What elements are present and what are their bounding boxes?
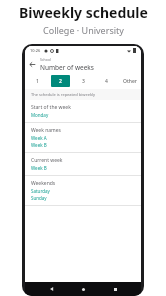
- staticText: Start of the week: [31, 104, 71, 111]
- button[interactable]: 3: [74, 75, 93, 87]
- staticText: Week B: [31, 142, 47, 148]
- button[interactable]: Recents: [110, 284, 120, 294]
- button[interactable]: 1: [27, 75, 47, 87]
- staticText: Sunday: [31, 195, 47, 201]
- staticText: 10:26: [30, 48, 41, 53]
- button[interactable]: Weekends: [25, 176, 141, 205]
- staticText: College · University: [43, 24, 124, 36]
- staticText: Biweekly schedule: [19, 3, 148, 22]
- button[interactable]: Other: [120, 75, 139, 87]
- staticText: Number of weeks: [40, 63, 94, 72]
- button[interactable]: Week names: [25, 123, 141, 152]
- staticText: 2: [59, 78, 62, 85]
- staticText: 4: [105, 78, 108, 85]
- button[interactable]: Start of the week: [25, 100, 141, 122]
- staticText: Week A: [31, 135, 47, 141]
- staticText: 3: [82, 78, 85, 85]
- button[interactable]: 4: [97, 75, 116, 87]
- staticText: Weekends: [31, 180, 56, 187]
- staticText: Other: [123, 78, 137, 85]
- staticText: Current week: [31, 157, 63, 164]
- button[interactable]: 2: [51, 75, 70, 87]
- staticText: School: [40, 57, 51, 62]
- button[interactable]: Current week: [25, 153, 141, 175]
- button[interactable]: Back: [25, 57, 39, 71]
- staticText: Week B: [31, 165, 47, 171]
- staticText: Monday: [31, 112, 49, 118]
- staticText: 1: [36, 78, 39, 85]
- button[interactable]: Home: [78, 284, 88, 294]
- staticText: The schedule is repeated biweekly: [31, 92, 96, 97]
- staticText: Saturday: [31, 188, 50, 194]
- button[interactable]: Back: [47, 284, 57, 294]
- staticText: Week names: [31, 127, 61, 134]
